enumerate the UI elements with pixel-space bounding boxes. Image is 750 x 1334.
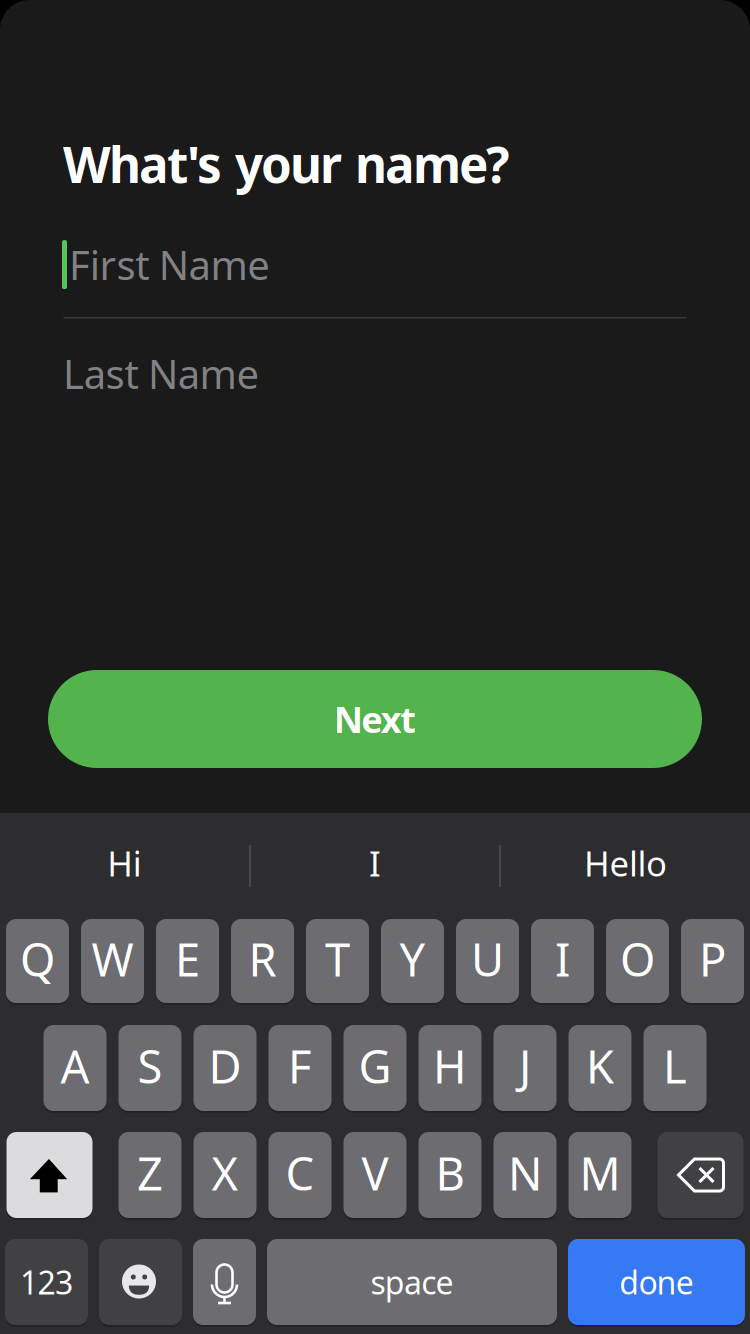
button[interactable]: N bbox=[493, 1132, 556, 1218]
staticText: W bbox=[91, 929, 133, 989]
button[interactable]: Dictation bbox=[193, 1239, 256, 1325]
button[interactable]: Next bbox=[48, 670, 702, 768]
button[interactable]: Hello bbox=[501, 813, 750, 919]
staticText: I bbox=[369, 840, 381, 886]
button[interactable]: M bbox=[568, 1132, 631, 1218]
button[interactable]: E bbox=[156, 919, 219, 1003]
button[interactable]: S bbox=[118, 1025, 181, 1111]
button[interactable]: R bbox=[231, 919, 294, 1003]
button[interactable]: J bbox=[493, 1025, 556, 1111]
staticText: X bbox=[211, 1143, 238, 1203]
staticText: K bbox=[586, 1036, 614, 1096]
staticText: Hi bbox=[107, 840, 142, 886]
staticText: H bbox=[433, 1036, 467, 1096]
staticText: P bbox=[699, 929, 726, 989]
staticText: J bbox=[519, 1036, 531, 1096]
staticText: 123 bbox=[20, 1261, 73, 1303]
staticText: S bbox=[137, 1036, 162, 1096]
button[interactable]: G bbox=[343, 1025, 406, 1111]
button[interactable]: First Name bbox=[0, 0, 208, 53]
button[interactable]: H bbox=[418, 1025, 481, 1111]
button[interactable]: Last Name bbox=[0, 0, 196, 53]
staticText: B bbox=[435, 1143, 464, 1203]
button[interactable]: X bbox=[193, 1132, 256, 1218]
staticText: R bbox=[248, 929, 276, 989]
staticText: E bbox=[175, 929, 200, 989]
staticText: Next bbox=[334, 695, 416, 743]
button[interactable]: L bbox=[643, 1025, 706, 1111]
staticText: T bbox=[325, 929, 350, 989]
button[interactable]: T bbox=[306, 919, 369, 1003]
button[interactable]: K bbox=[568, 1025, 631, 1111]
button[interactable]: Y bbox=[381, 919, 444, 1003]
staticText: your bbox=[235, 131, 342, 196]
staticText: Y bbox=[399, 929, 425, 989]
button[interactable]: space bbox=[267, 1239, 557, 1325]
staticText: L bbox=[663, 1036, 687, 1096]
button[interactable]: done bbox=[568, 1239, 745, 1325]
staticText: A bbox=[60, 1036, 89, 1096]
staticText: G bbox=[358, 1036, 391, 1096]
staticText: V bbox=[361, 1143, 388, 1203]
staticText: O bbox=[620, 929, 655, 989]
button[interactable]: Delete bbox=[657, 1132, 743, 1218]
staticText: Z bbox=[137, 1143, 163, 1203]
staticText: M bbox=[579, 1143, 620, 1203]
staticText: I bbox=[555, 929, 570, 989]
button[interactable]: P bbox=[681, 919, 744, 1003]
staticText: name? bbox=[355, 131, 510, 196]
button[interactable]: I bbox=[251, 813, 499, 919]
button[interactable]: Numbers bbox=[5, 1239, 88, 1325]
button[interactable]: Emoji bbox=[99, 1239, 182, 1325]
staticText: D bbox=[208, 1036, 241, 1096]
staticText: Last Name bbox=[63, 347, 259, 400]
button[interactable]: F bbox=[268, 1025, 331, 1111]
button[interactable]: Shift bbox=[6, 1132, 92, 1218]
staticText: N bbox=[508, 1143, 542, 1203]
staticText: space bbox=[371, 1261, 453, 1303]
button[interactable]: D bbox=[193, 1025, 256, 1111]
button[interactable]: C bbox=[268, 1132, 331, 1218]
staticText: F bbox=[288, 1036, 312, 1096]
staticText: done bbox=[619, 1261, 694, 1303]
button[interactable]: Hi bbox=[0, 813, 249, 919]
button[interactable]: U bbox=[456, 919, 519, 1003]
staticText: Hello bbox=[584, 840, 667, 886]
button[interactable]: V bbox=[343, 1132, 406, 1218]
button[interactable]: A bbox=[43, 1025, 106, 1111]
button[interactable]: W bbox=[81, 919, 144, 1003]
staticText: U bbox=[471, 929, 504, 989]
button[interactable]: Q bbox=[6, 919, 69, 1003]
button[interactable]: B bbox=[418, 1132, 481, 1218]
button[interactable]: I bbox=[531, 919, 594, 1003]
staticText: First Name bbox=[69, 238, 270, 291]
button[interactable]: Z bbox=[118, 1132, 181, 1218]
button[interactable]: O bbox=[606, 919, 669, 1003]
staticText: Q bbox=[20, 929, 55, 989]
staticText: What's bbox=[63, 131, 222, 196]
staticText: C bbox=[285, 1143, 314, 1203]
